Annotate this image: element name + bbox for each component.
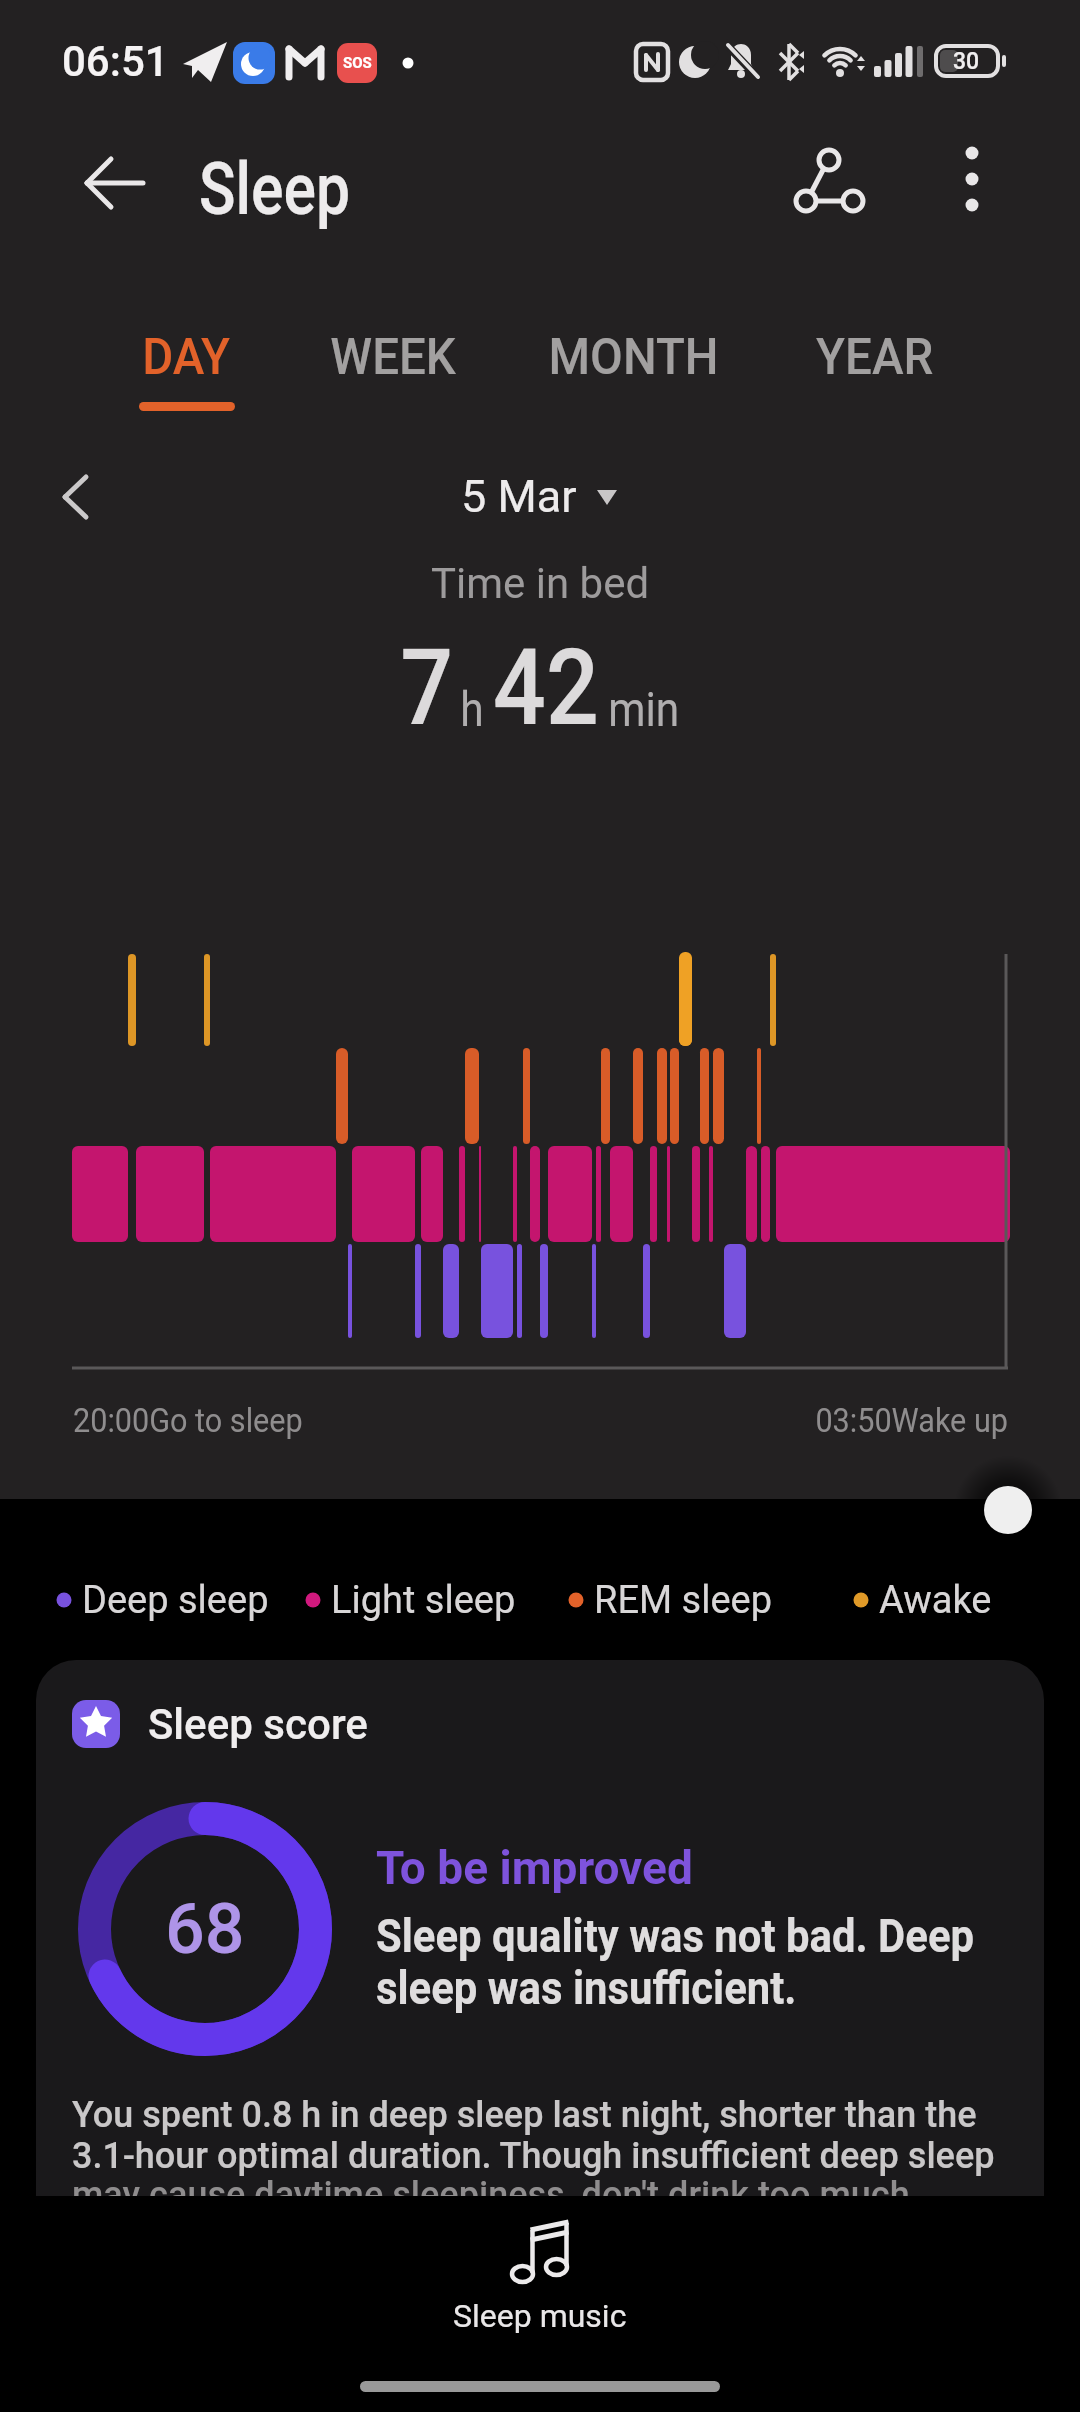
button[interactable]: DAY xyxy=(76,322,296,392)
button[interactable] xyxy=(60,148,160,218)
staticText: SOS xyxy=(343,54,372,72)
button[interactable] xyxy=(360,2381,720,2392)
staticText: MONTH xyxy=(548,328,719,387)
staticText: may cause daytime sleepiness, don't drin… xyxy=(72,2174,910,2196)
staticText: sleep was insufficient. xyxy=(376,1960,797,2015)
staticText: h xyxy=(460,681,484,737)
staticText: 03:50Wake up xyxy=(815,1400,1008,1440)
button[interactable]: WEEK xyxy=(283,322,503,392)
staticText: Light sleep xyxy=(331,1578,516,1623)
staticText: 42 xyxy=(493,627,599,750)
staticText: 7 xyxy=(400,627,453,750)
button[interactable] xyxy=(776,132,880,236)
staticText: WEEK xyxy=(330,328,457,387)
button[interactable]: Sleep score xyxy=(36,1660,1044,2196)
staticText: To be improved xyxy=(376,1841,693,1895)
staticText: 06:51 xyxy=(62,37,169,86)
staticText: Awake xyxy=(879,1578,992,1623)
staticText: Sleep music xyxy=(453,2297,627,2335)
staticText: 20:00Go to sleep xyxy=(73,1400,303,1440)
button[interactable]: Sleep music xyxy=(453,2218,627,2335)
button[interactable]: 5 Mar xyxy=(461,470,619,523)
staticText: DAY xyxy=(142,328,231,387)
staticText: You spent 0.8 h in deep sleep last night… xyxy=(72,2094,995,2176)
staticText: 5 Mar xyxy=(461,470,577,523)
button[interactable]: MONTH xyxy=(524,322,744,392)
staticText: 68 xyxy=(165,1888,245,1970)
staticText: REM sleep xyxy=(594,1578,773,1623)
button[interactable] xyxy=(928,132,1018,236)
staticText: Deep sleep xyxy=(82,1578,269,1623)
button[interactable] xyxy=(40,462,110,532)
button[interactable] xyxy=(984,1486,1032,1534)
staticText: Sleep quality was not bad. Deep xyxy=(376,1908,975,1963)
staticText: Sleep xyxy=(199,147,350,231)
staticText: 30 xyxy=(953,48,980,75)
staticText: YEAR xyxy=(816,328,934,387)
staticText: min xyxy=(608,681,680,737)
staticText: Time in bed xyxy=(431,559,650,608)
button[interactable]: YEAR xyxy=(765,322,985,392)
staticText: Sleep score xyxy=(148,1700,368,1749)
